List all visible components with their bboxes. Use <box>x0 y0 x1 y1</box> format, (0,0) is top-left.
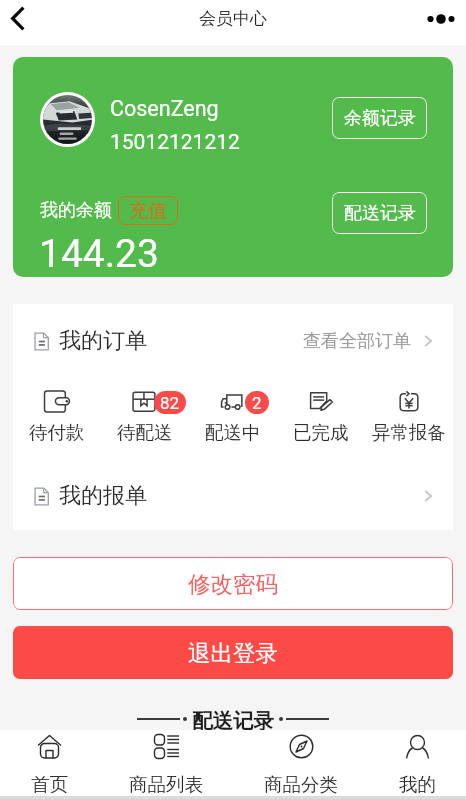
button[interactable]: 我的报单 <box>13 448 453 530</box>
staticText: 144.23 <box>39 231 159 277</box>
button[interactable]: 82 <box>101 378 189 444</box>
staticText: 余额记录 <box>344 107 416 130</box>
staticText: 待配送 <box>117 421 173 444</box>
button[interactable]: 待付款 <box>13 378 101 444</box>
staticText: 修改密码 <box>188 570 278 598</box>
staticText: 充值 <box>129 199 167 223</box>
staticText: 我的报单 <box>59 482 147 510</box>
staticText: 配送中 <box>205 421 261 444</box>
staticText: 我的订单 <box>59 327 147 355</box>
staticText: 配送记录 <box>344 202 416 225</box>
staticText: 查看全部订单 <box>303 330 411 353</box>
staticText: 2 <box>252 393 262 413</box>
button[interactable]: 我的 <box>368 730 466 796</box>
staticText: 首页 <box>31 773 68 796</box>
staticText: 会员中心 <box>199 8 267 29</box>
staticText: 商品分类 <box>264 773 338 796</box>
staticText: 待付款 <box>29 421 85 444</box>
staticText: CosenZeng <box>110 96 219 121</box>
staticText: 退出登录 <box>188 639 278 667</box>
button[interactable]: 首页 <box>0 730 98 796</box>
staticText: 配送记录 <box>192 708 274 730</box>
button[interactable]: 2 <box>189 378 277 444</box>
button[interactable]: 余额记录 <box>332 97 427 139</box>
staticText: 已完成 <box>293 421 349 444</box>
button[interactable]: 充值 <box>118 196 178 225</box>
staticText: 82 <box>160 393 180 413</box>
button[interactable]: 商品列表 <box>98 730 234 796</box>
button[interactable]: Back <box>0 0 36 41</box>
staticText: 我的 <box>399 773 436 796</box>
staticText: 异常报备 <box>372 421 446 444</box>
staticText: 15012121212 <box>110 130 240 155</box>
staticText: 商品列表 <box>129 773 203 796</box>
button[interactable]: 已完成 <box>277 378 365 444</box>
button[interactable]: 配送记录 <box>332 192 427 234</box>
button[interactable]: 异常报备 <box>365 378 453 444</box>
staticText: 我的余额 <box>40 199 112 222</box>
button[interactable]: 商品分类 <box>234 730 368 796</box>
button[interactable]: 退出登录 <box>13 626 453 679</box>
button[interactable]: 修改密码 <box>13 557 453 610</box>
button[interactable]: 我的订单 <box>13 304 453 378</box>
button[interactable]: More options <box>419 0 466 39</box>
